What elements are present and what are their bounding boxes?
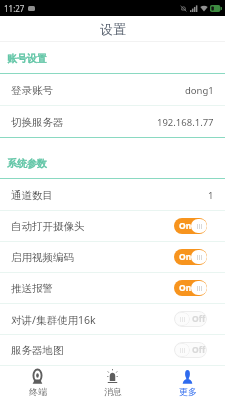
button[interactable]: 消息 <box>75 366 150 400</box>
staticText: Off <box>192 344 206 356</box>
staticText: On <box>179 251 192 263</box>
button[interactable]: 启用视频编码 <box>0 242 225 273</box>
button[interactable]: On <box>174 280 207 296</box>
staticText: 推送报警 <box>11 282 53 295</box>
button[interactable]: 通道数目 <box>0 179 225 211</box>
button[interactable]: On <box>174 249 207 265</box>
button[interactable]: 切换服务器 <box>0 106 225 138</box>
button[interactable]: 推送报警 <box>0 273 225 304</box>
staticText: On <box>179 220 192 232</box>
staticText: 登录账号 <box>11 84 53 97</box>
staticText: 启用视频编码 <box>11 251 74 264</box>
staticText: 切换服务器 <box>11 116 64 129</box>
staticText: 系统参数 <box>7 157 47 170</box>
button[interactable]: 登录账号 <box>0 74 225 106</box>
staticText: 1 <box>208 189 214 202</box>
button[interactable]: 自动打开摄像头 <box>0 211 225 242</box>
staticText: 服务器地图 <box>11 344 64 357</box>
button[interactable]: 更多 <box>150 366 225 400</box>
staticText: 自动打开摄像头 <box>11 220 85 233</box>
staticText: 设置 <box>100 21 126 37</box>
button[interactable]: 终端 <box>0 366 75 400</box>
button[interactable]: On <box>174 218 207 234</box>
button[interactable]: 服务器地图 <box>0 335 225 366</box>
staticText: 终端 <box>29 386 47 397</box>
button[interactable]: 对讲/集群使用16k <box>0 304 225 335</box>
staticText: 11:27 <box>4 3 25 14</box>
staticText: 更多 <box>179 386 197 397</box>
staticText: Off <box>192 313 206 325</box>
staticText: 消息 <box>104 386 122 397</box>
staticText: dong1 <box>185 84 214 97</box>
button[interactable]: Off <box>174 311 207 327</box>
staticText: On <box>179 282 192 294</box>
staticText: 账号设置 <box>7 52 47 65</box>
button[interactable]: Off <box>174 342 207 358</box>
staticText: 对讲/集群使用16k <box>11 313 96 327</box>
staticText: 192.168.1.77 <box>157 116 214 129</box>
staticText: 通道数目 <box>11 189 53 202</box>
